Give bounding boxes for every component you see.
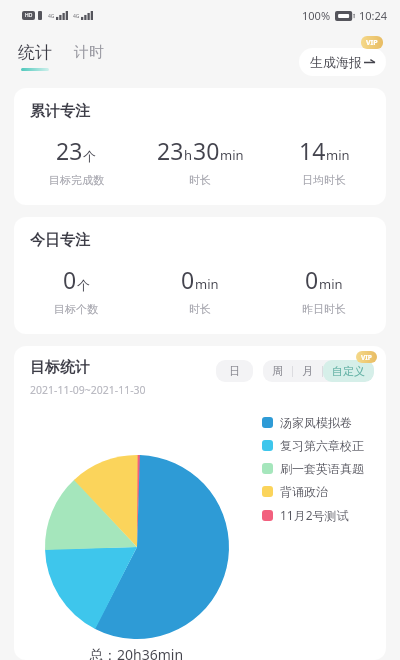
staticText: 4G [73,13,80,20]
staticText: 周 [272,364,283,378]
staticText: 统计 [18,42,52,63]
staticText: 个 [77,277,90,293]
staticText: 背诵政治 [280,484,328,499]
staticText: 时长 [189,173,211,187]
button[interactable]: 生成海报 [299,48,386,76]
staticText: 0 [305,264,319,295]
staticText: 刷一套英语真题 [280,461,364,476]
staticText: 11月2号测试 [280,507,349,523]
staticText: 23 [56,135,83,166]
button[interactable]: 计时 [74,43,104,70]
staticText: 0 [181,264,195,295]
staticText: VIP [361,353,372,362]
staticText: 昨日时长 [302,302,346,316]
staticText: 23 [157,135,184,166]
staticText: 日均时长 [302,173,346,187]
staticText: HD [25,12,33,19]
staticText: min [319,275,343,293]
staticText: 0 [63,264,77,295]
button[interactable]: 日 [216,360,253,382]
staticText: 目标统计 [30,358,90,377]
staticText: 目标个数 [54,302,98,316]
staticText: 复习第六章校正 [280,438,364,453]
staticText: 4G [48,13,55,20]
staticText: 14 [299,135,326,166]
staticText: min [326,146,350,164]
staticText: 日 [229,364,240,378]
button[interactable]: 周 [263,360,292,382]
staticText: min [220,146,244,164]
staticText: 自定义 [332,364,365,378]
staticText: 目标完成数 [49,173,104,187]
staticText: 汤家凤模拟卷 [280,415,352,430]
staticText: 总：20h36min [89,645,184,660]
staticText: 10:24 [359,8,388,23]
button[interactable]: 自定义 [323,360,374,382]
button[interactable]: 月 [293,360,322,382]
staticText: 时长 [189,302,211,316]
staticText: 月 [302,364,313,378]
staticText: 计时 [74,43,104,62]
staticText: 100% [302,8,331,23]
button[interactable]: 统计 [18,42,52,71]
staticText: h [184,146,193,164]
staticText: 累计专注 [30,102,90,121]
staticText: 2021-11-09~2021-11-30 [30,383,146,397]
staticText: min [195,275,219,293]
staticText: 生成海报 [310,54,362,70]
staticText: 个 [83,148,96,164]
staticText: 30 [193,135,220,166]
staticText: 今日专注 [30,231,90,250]
staticText: VIP [366,38,378,48]
